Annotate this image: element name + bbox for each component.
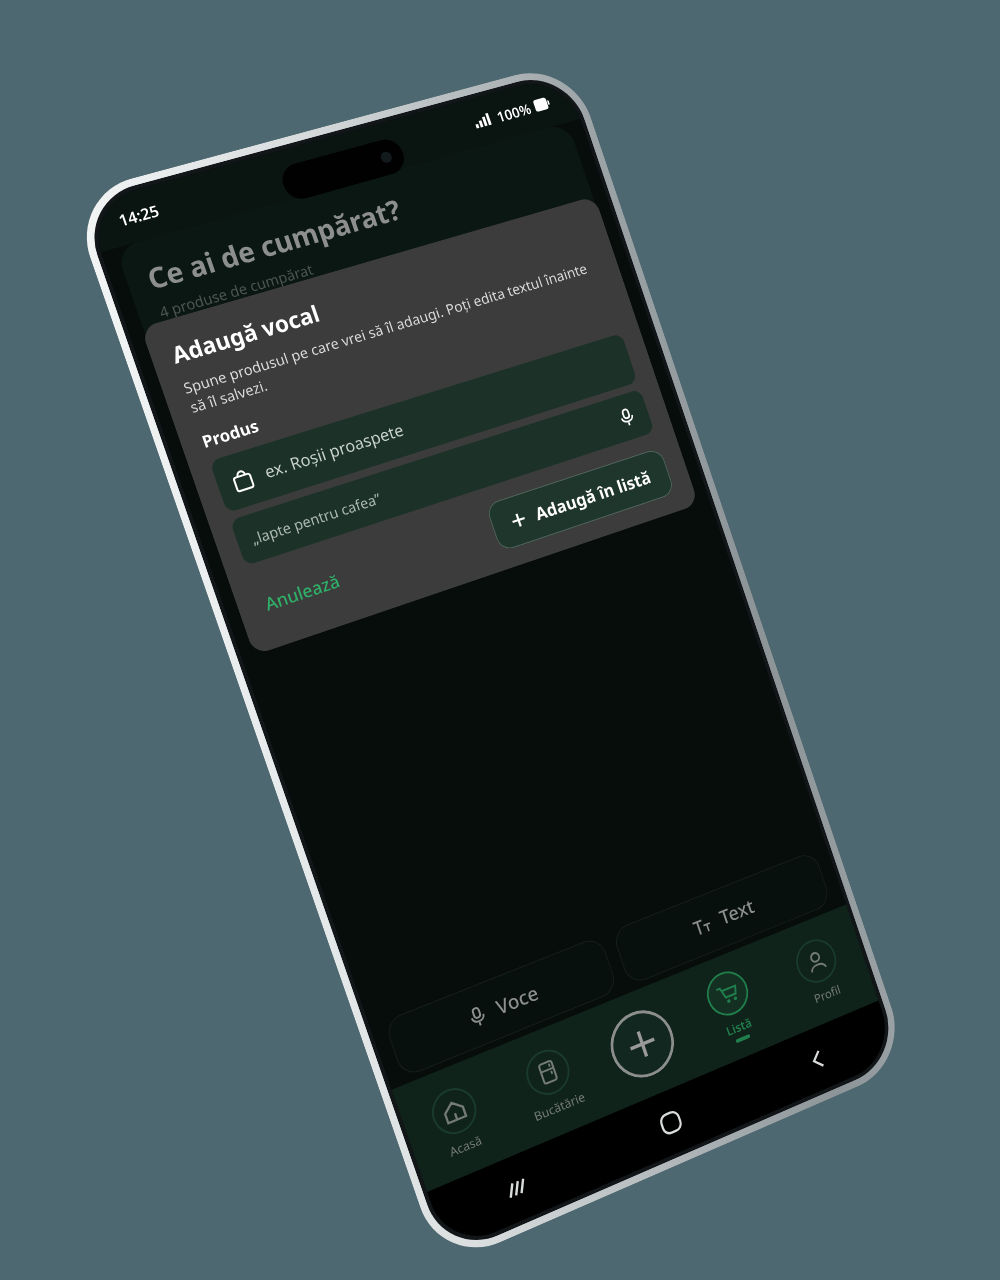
button[interactable]: ex. Roșii proaspete (209, 333, 638, 513)
button[interactable]: Profil (765, 919, 874, 1023)
staticText: Voce (493, 979, 543, 1021)
staticText: ex. Roșii proaspete (261, 418, 407, 483)
staticText: 100% (494, 99, 534, 126)
staticText: Adaugă vocal (167, 297, 323, 370)
staticText: Ce ai de cumpărat? (142, 190, 406, 298)
staticText: Anulează (261, 568, 343, 616)
button[interactable]: Caută rapid... (168, 216, 594, 382)
button[interactable]: Voce (383, 935, 619, 1078)
staticText: Bucătărie (532, 1088, 587, 1124)
staticText: Spune produsul pe care vrei să îl adaugi… (181, 255, 607, 417)
button[interactable]: Adaugă în listă (485, 447, 676, 552)
button[interactable]: Text (611, 850, 832, 986)
button[interactable]: Anulează (253, 561, 351, 624)
button[interactable]: Listă (675, 951, 789, 1063)
staticText: Acasă (447, 1131, 484, 1160)
staticText: 4 produse de cumpărat (157, 259, 316, 322)
staticText: Caută rapid... (187, 317, 287, 365)
button[interactable]: Bucătărie (492, 1028, 609, 1137)
button[interactable]: Recente (427, 1125, 605, 1253)
button[interactable]: Înapoi (735, 1000, 898, 1120)
staticText: 14:25 (115, 200, 162, 231)
button[interactable]: Adaugă (601, 1000, 683, 1088)
staticText: „lapte pentru cafea” (248, 488, 383, 548)
button[interactable]: Acasă (397, 1066, 517, 1177)
staticText: Adaugă în listă (532, 465, 654, 525)
staticText: Profil (812, 981, 843, 1006)
staticText: Produs (199, 414, 262, 453)
staticText: Text (716, 893, 758, 931)
button[interactable]: Acasă (584, 1061, 754, 1185)
button[interactable]: „lapte pentru cafea” (230, 389, 655, 566)
staticText: Listă (724, 1014, 754, 1039)
other: Microfon (616, 406, 638, 428)
